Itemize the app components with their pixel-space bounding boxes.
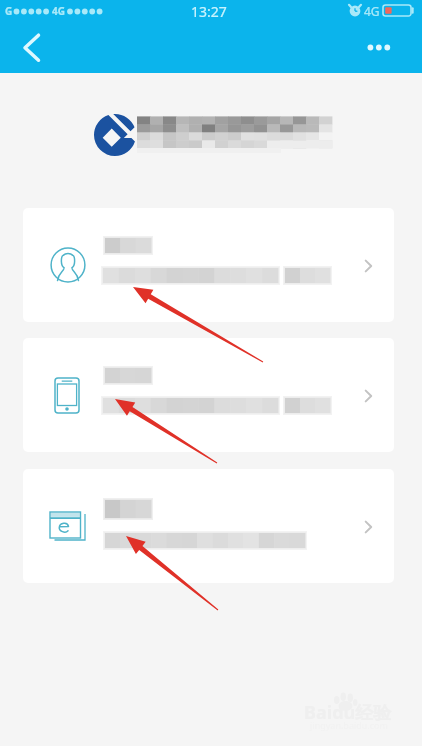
staticText: G	[5, 4, 13, 18]
button[interactable]	[23, 469, 394, 583]
button[interactable]: More options	[364, 24, 422, 73]
button[interactable]	[23, 338, 394, 452]
button[interactable]: Back	[0, 24, 56, 73]
button[interactable]	[23, 208, 394, 322]
staticText: 4G	[364, 3, 380, 19]
staticText: 13:27	[191, 2, 227, 21]
staticText: 4G	[52, 4, 65, 18]
